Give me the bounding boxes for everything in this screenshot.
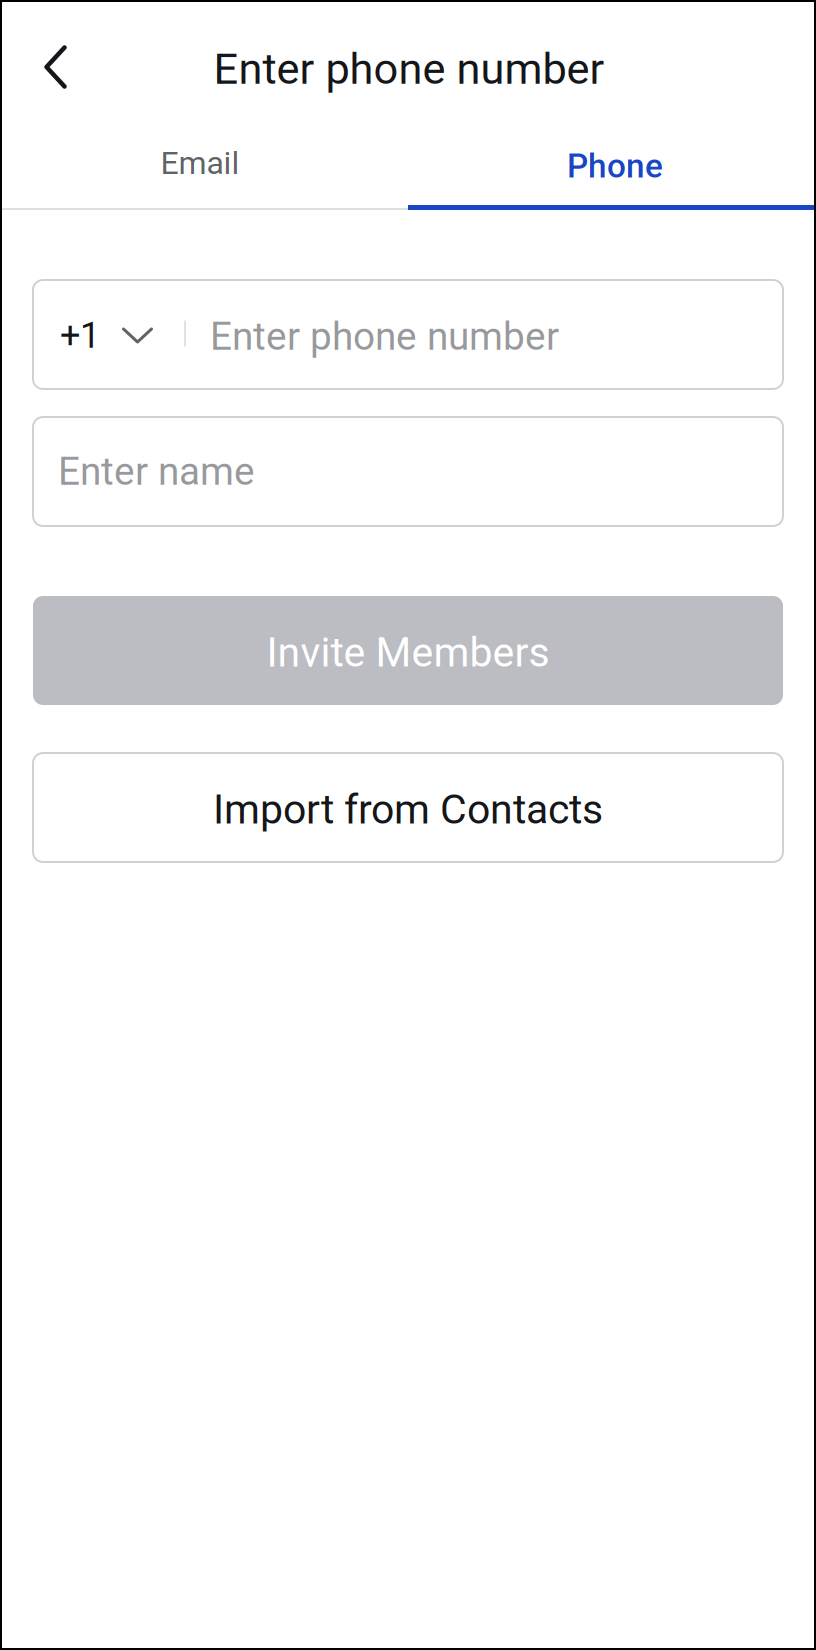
- staticText: Import from Contacts: [213, 785, 603, 833]
- button[interactable]: Enter phone number: [184, 280, 783, 389]
- button[interactable]: Phone: [408, 124, 816, 210]
- button[interactable]: Email: [0, 124, 408, 210]
- button[interactable]: Import from Contacts: [33, 753, 783, 862]
- button[interactable]: Invite Members: [33, 596, 783, 705]
- staticText: Enter phone number: [213, 44, 604, 94]
- button[interactable]: Back: [0, 16, 91, 108]
- staticText: Enter name: [58, 449, 255, 494]
- staticText: Invite Members: [266, 628, 549, 676]
- staticText: Phone: [567, 146, 663, 186]
- button[interactable]: Country code +1: [33, 280, 167, 389]
- button[interactable]: Enter name: [33, 417, 783, 526]
- staticText: Email: [160, 144, 239, 182]
- staticText: Enter phone number: [210, 314, 559, 359]
- staticText: +1: [60, 314, 100, 357]
